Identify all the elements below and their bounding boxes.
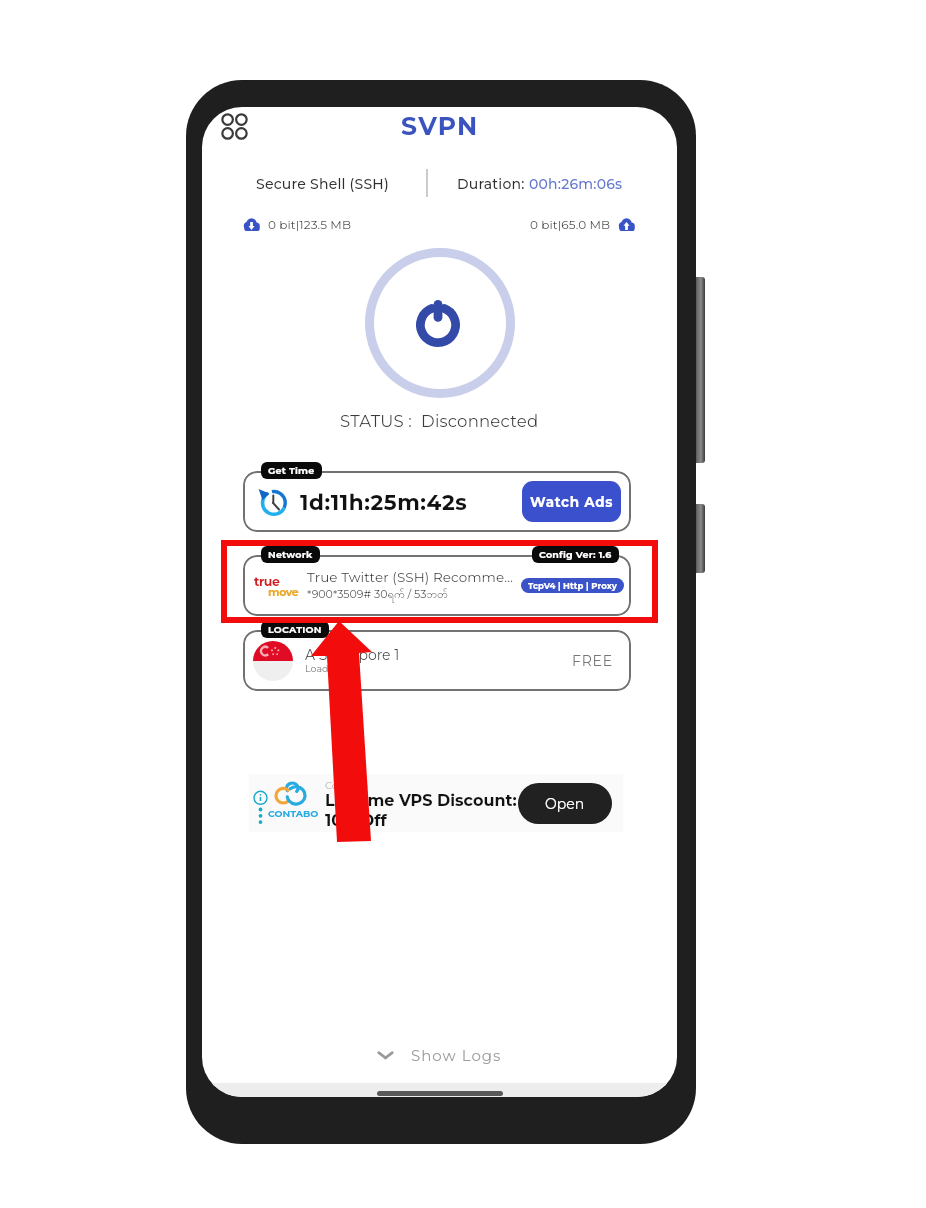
staticText: Loading...: [305, 663, 351, 675]
button[interactable]: 1d:11h:25m:42s: [243, 471, 631, 532]
staticText: Watch Ads: [530, 494, 614, 510]
staticText: 0 bit|123.5 MB: [268, 217, 352, 232]
button[interactable]: Show Logs: [202, 1033, 677, 1077]
staticText: Secure Shell (SSH): [256, 175, 389, 192]
button[interactable]: Connect VPN: [365, 248, 515, 398]
staticText: move: [268, 585, 299, 598]
staticText: Config Ver: 1.6: [539, 549, 612, 561]
button[interactable]: true: [243, 555, 631, 616]
staticText: 1d:11h:25m:42s: [300, 489, 468, 515]
staticText: Network: [268, 549, 313, 561]
staticText: 10% Off: [325, 811, 387, 831]
staticText: TcpV4 | Http | Proxy: [528, 581, 617, 591]
staticText: Contabo: [325, 779, 368, 791]
button[interactable]: Watch Ads: [522, 481, 621, 522]
staticText: *900*3509# 30ရက် / 53ဘတ်: [307, 587, 448, 603]
staticText: 00h:26m:06s: [529, 175, 623, 192]
staticText: Show Logs: [411, 1046, 502, 1064]
button[interactable]: CONTABO: [249, 774, 623, 832]
button[interactable]: Menu: [211, 107, 257, 149]
staticText: SVPN: [401, 111, 479, 141]
staticText: Open: [545, 795, 585, 812]
staticText: STATUS : Disconnected: [340, 411, 539, 431]
staticText: CONTABO: [268, 808, 319, 820]
staticText: True Twitter (SSH) Recommen…: [307, 569, 518, 585]
staticText: LOCATION: [268, 624, 322, 636]
staticText: A Singapore 1: [305, 646, 400, 663]
staticText: Get Time: [268, 465, 315, 477]
staticText: FREE: [572, 652, 613, 669]
staticText: Lifetime VPS Discount:: [325, 791, 517, 811]
staticText: Duration:: [457, 175, 529, 192]
staticText: 0 bit|65.0 MB: [530, 217, 611, 232]
button[interactable]: A Singapore 1: [243, 630, 631, 691]
button[interactable]: Open: [518, 783, 612, 824]
staticText: true: [254, 574, 280, 589]
